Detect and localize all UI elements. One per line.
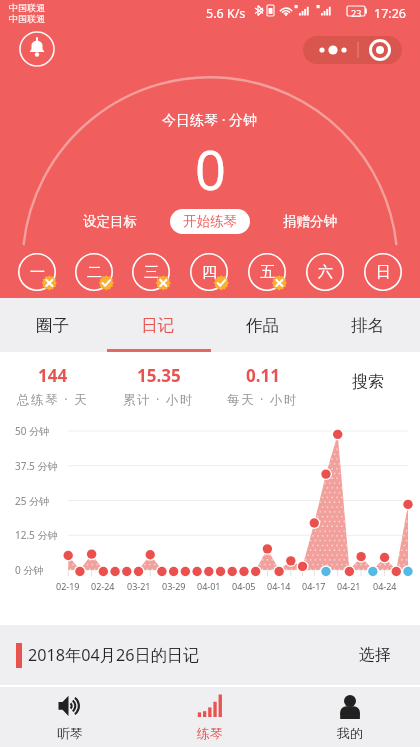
staticText: 04-17 <box>302 580 326 592</box>
button[interactable]: 捐赠分钟 <box>275 209 345 234</box>
button[interactable]: 听琴 <box>0 687 140 747</box>
staticText: 开始练琴 <box>183 213 237 230</box>
button[interactable]: 五 <box>238 250 296 294</box>
staticText: 中国联通 <box>9 2 45 13</box>
staticText: 圈子 <box>36 315 69 336</box>
staticText: 设定目标 <box>83 213 137 230</box>
staticText: 04-24 <box>373 580 397 592</box>
button[interactable]: 开始练琴 <box>170 209 250 234</box>
staticText: 日 <box>376 263 391 282</box>
button[interactable]: 2018年04月26日的日记 <box>0 625 420 685</box>
staticText: 02-19 <box>56 580 80 592</box>
staticText: 03-29 <box>162 580 186 592</box>
button[interactable]: 四 <box>180 250 238 294</box>
staticText: 23 <box>351 7 362 19</box>
staticText: 50 分钟 <box>15 424 50 438</box>
button[interactable]: 排名 <box>315 298 420 352</box>
staticText: 今日练琴 · 分钟 <box>162 110 258 129</box>
button[interactable]: 日记 <box>105 298 210 352</box>
staticText: 25 分钟 <box>15 494 50 508</box>
staticText: 三 <box>144 263 159 282</box>
staticText: 一 <box>30 263 45 282</box>
button[interactable]: Assistive touch <box>303 36 402 64</box>
staticText: 5.6 K/s <box>206 5 246 22</box>
button[interactable]: 三 <box>122 250 180 294</box>
button[interactable]: 练琴 <box>140 687 280 747</box>
staticText: 15.35 <box>137 364 181 387</box>
button[interactable]: 作品 <box>210 298 315 352</box>
staticText: 五 <box>260 263 275 282</box>
button[interactable]: 二 <box>65 250 122 294</box>
staticText: 六 <box>318 263 333 282</box>
staticText: 02-24 <box>91 580 115 592</box>
staticText: 四 <box>202 263 217 282</box>
staticText: 练琴 <box>197 725 223 741</box>
button[interactable]: 圈子 <box>0 298 105 352</box>
staticText: 作品 <box>246 315 279 336</box>
staticText: 04-21 <box>337 580 361 592</box>
staticText: 选择 <box>359 645 391 665</box>
staticText: 03-21 <box>127 580 151 592</box>
staticText: 144 <box>38 364 68 387</box>
staticText: 37.5 分钟 <box>15 459 58 473</box>
staticText: 累计 · 小时 <box>123 391 195 408</box>
staticText: 二 <box>87 263 102 282</box>
staticText: 总练琴 · 天 <box>17 391 89 408</box>
staticText: 04-01 <box>197 580 221 592</box>
button[interactable]: 搜索 <box>340 362 396 402</box>
button[interactable]: 六 <box>296 250 354 294</box>
staticText: 2018年04月26日的日记 <box>28 644 200 666</box>
staticText: 04-05 <box>232 580 256 592</box>
staticText: 中国联通 <box>9 13 45 24</box>
button[interactable]: 日 <box>354 250 412 294</box>
button[interactable]: 设定目标 <box>75 209 145 234</box>
staticText: 捐赠分钟 <box>283 213 337 230</box>
button[interactable]: 我的 <box>280 687 420 747</box>
staticText: 12.5 分钟 <box>15 528 58 542</box>
button[interactable]: Notifications <box>19 31 55 67</box>
staticText: 0 <box>195 132 226 206</box>
button[interactable]: 一 <box>8 250 65 294</box>
staticText: 排名 <box>351 315 384 336</box>
staticText: 听琴 <box>57 725 83 741</box>
staticText: 每天 · 小时 <box>227 391 299 408</box>
staticText: 我的 <box>337 725 363 741</box>
staticText: 17:26 <box>374 5 406 22</box>
staticText: 0.11 <box>246 364 280 387</box>
staticText: 0 分钟 <box>15 563 44 577</box>
staticText: 日记 <box>141 315 174 336</box>
staticText: 搜索 <box>352 372 384 392</box>
staticText: 04-14 <box>267 580 291 592</box>
